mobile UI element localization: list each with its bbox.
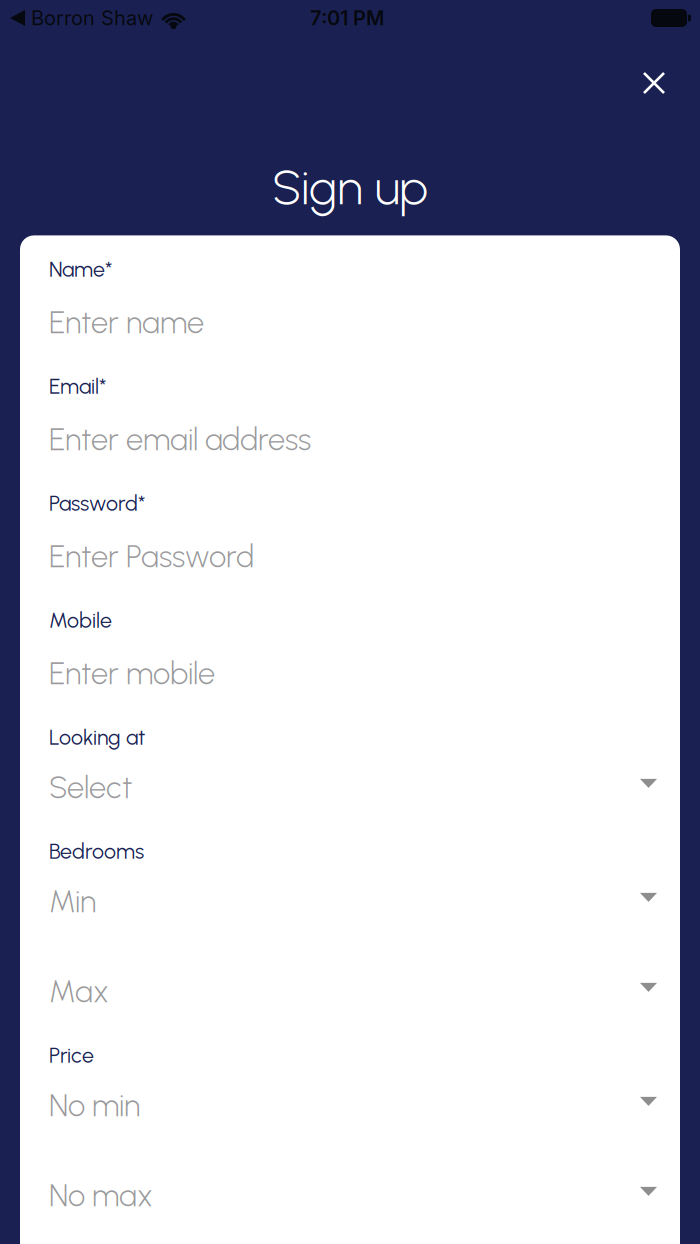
staticText: Price <box>49 1043 94 1068</box>
staticText: Looking at <box>49 725 145 750</box>
staticText: Mobile <box>49 608 112 633</box>
staticText: Borron Shaw <box>31 6 153 30</box>
button[interactable]: No max <box>49 1178 657 1212</box>
button[interactable]: Back to Borron Shaw <box>10 6 153 30</box>
staticText: Sign up <box>272 158 428 216</box>
staticText: Password* <box>49 491 146 516</box>
button[interactable]: Select <box>49 770 657 804</box>
staticText: Name* <box>49 257 113 282</box>
button[interactable]: Enter mobile <box>49 656 657 690</box>
button[interactable]: Enter name <box>49 305 657 339</box>
button[interactable]: No min <box>49 1088 657 1122</box>
staticText: No max <box>49 1177 153 1214</box>
staticText: Email* <box>49 374 107 399</box>
button[interactable]: Enter Password <box>49 539 657 573</box>
button[interactable]: Close <box>634 63 674 103</box>
button[interactable]: Min <box>49 884 657 918</box>
staticText: Enter mobile <box>49 655 215 692</box>
staticText: Enter name <box>49 304 204 341</box>
staticText: Select <box>49 769 132 806</box>
staticText: Min <box>49 883 96 920</box>
staticText: Bedrooms <box>49 839 144 864</box>
staticText: 7:01 PM <box>310 6 384 30</box>
staticText: Enter Password <box>49 538 254 575</box>
button[interactable]: Max <box>49 974 657 1008</box>
staticText: No min <box>49 1087 140 1124</box>
staticText: Max <box>49 973 109 1010</box>
staticText: Enter email address <box>49 421 311 458</box>
button[interactable]: Enter email address <box>49 422 657 456</box>
